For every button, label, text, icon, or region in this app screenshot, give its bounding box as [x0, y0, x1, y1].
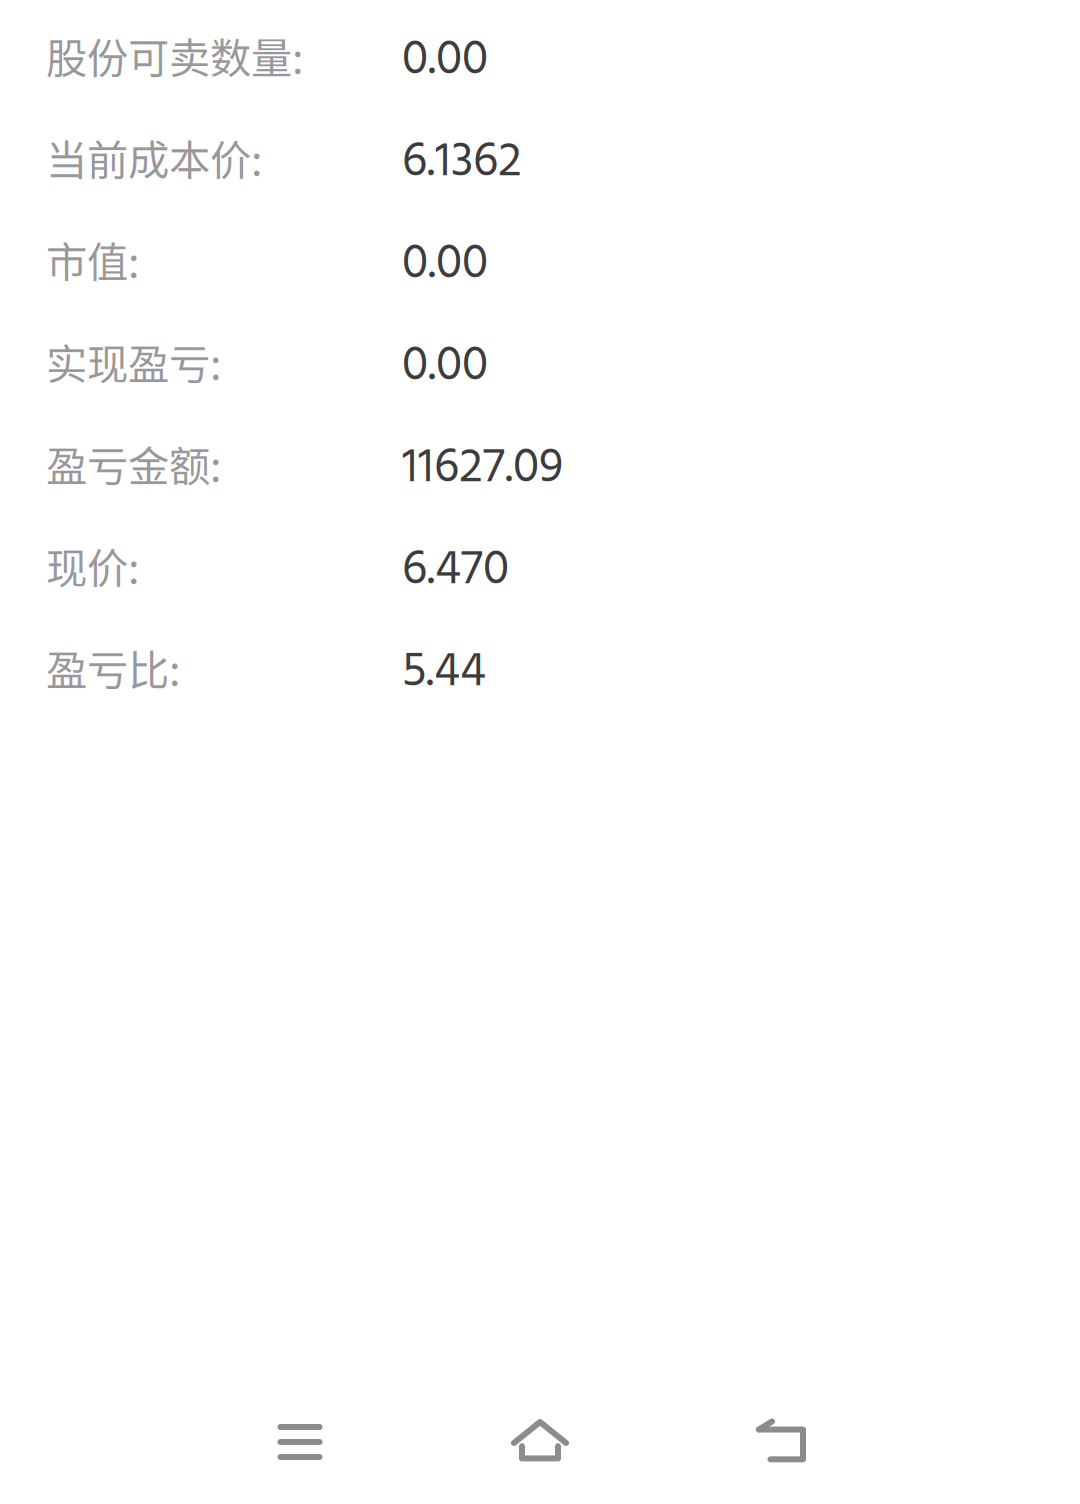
staticText: 0.00 — [402, 329, 488, 405]
button[interactable]: Recent apps — [180, 1380, 420, 1504]
staticText: 市值: — [46, 229, 139, 289]
button[interactable]: Home — [420, 1380, 660, 1504]
staticText: 股份可卖数量: — [46, 25, 303, 85]
staticText: 11627.09 — [402, 431, 563, 507]
staticText: 实现盈亏: — [46, 331, 221, 391]
staticText: 盈亏金额: — [46, 433, 221, 493]
staticText: 现价: — [46, 535, 139, 595]
staticText: 6.470 — [402, 533, 509, 609]
button[interactable]: Back — [660, 1380, 900, 1504]
staticText: 0.00 — [402, 227, 488, 303]
staticText: 盈亏比: — [46, 637, 180, 697]
staticText: 5.44 — [402, 635, 486, 711]
staticText: 当前成本价: — [46, 127, 262, 187]
staticText: 0.00 — [402, 23, 488, 99]
staticText: 6.1362 — [402, 125, 522, 201]
